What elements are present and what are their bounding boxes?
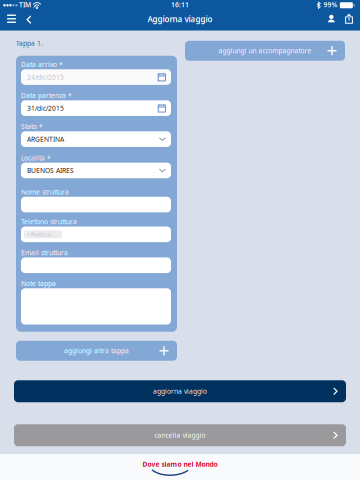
staticText: Dove siamo nel Mondo: [142, 460, 217, 469]
staticText: 16:11: [171, 0, 189, 9]
staticText: Nome struttura: [21, 187, 69, 196]
staticText: aggiorna viaggio: [153, 387, 207, 396]
button[interactable]: Share: [340, 12, 358, 30]
button[interactable]: Back: [21, 12, 37, 30]
staticText: aggiungi un accompagnatore: [218, 46, 311, 55]
staticText: aggiungi altra tappa: [64, 346, 129, 355]
staticText: Aggiorna viaggio: [147, 14, 212, 24]
button[interactable]: aggiungi un accompagnatore: [185, 41, 345, 61]
staticText: 99%: [321, 0, 339, 9]
staticText: ARGENTINA: [27, 135, 64, 144]
staticText: Stato *: [21, 122, 43, 131]
staticText: cancella viaggio: [154, 431, 205, 440]
button[interactable]: Profile: [323, 12, 340, 30]
staticText: Email struttura: [21, 248, 68, 257]
staticText: Note tappa: [21, 279, 56, 288]
staticText: Data arrivo *: [21, 60, 63, 69]
staticText: TIM: [17, 0, 33, 9]
staticText: BUENOS AIRES: [27, 166, 74, 175]
staticText: 31/dic/2015: [27, 104, 64, 113]
staticText: + Prefisso: [27, 231, 51, 238]
staticText: Tappa 1.: [16, 39, 43, 48]
staticText: 24/dic/2015: [27, 73, 64, 81]
button[interactable]: aggiorna viaggio: [14, 380, 346, 402]
button[interactable]: aggiungi altra tappa: [16, 341, 177, 361]
staticText: Telefono struttura: [21, 217, 77, 226]
staticText: Data partenza *: [21, 91, 72, 100]
staticText: Località *: [21, 153, 51, 162]
button[interactable]: Menu: [2, 12, 21, 30]
button[interactable]: cancella viaggio: [14, 424, 346, 446]
